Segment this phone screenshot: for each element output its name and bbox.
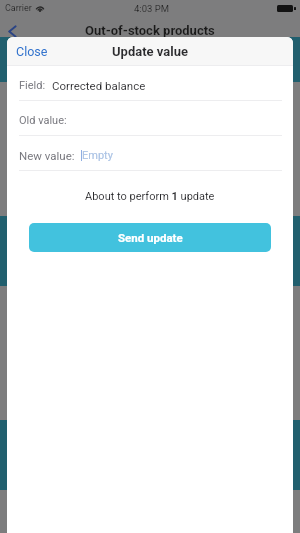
button[interactable]: Field: (7, 66, 293, 101)
staticText: Send update (118, 231, 183, 244)
button[interactable]: Send update (29, 223, 271, 252)
staticText: Carrier (5, 3, 32, 14)
staticText: Field: (19, 79, 46, 92)
button[interactable]: New value: (7, 136, 293, 171)
staticText: Out-of-stock products (85, 23, 215, 38)
staticText: About to perform 1 update (85, 190, 215, 203)
staticText: Empty (82, 149, 113, 162)
staticText: Corrected balance (52, 79, 146, 92)
staticText: Update value (112, 44, 188, 59)
button[interactable]: Back (1, 20, 23, 42)
button[interactable]: Close (7, 39, 57, 64)
staticText: New value: (19, 149, 75, 162)
button[interactable]: Old value: (7, 101, 293, 136)
staticText: Old value: (19, 114, 67, 127)
staticText: 4:03 PM (134, 3, 169, 14)
